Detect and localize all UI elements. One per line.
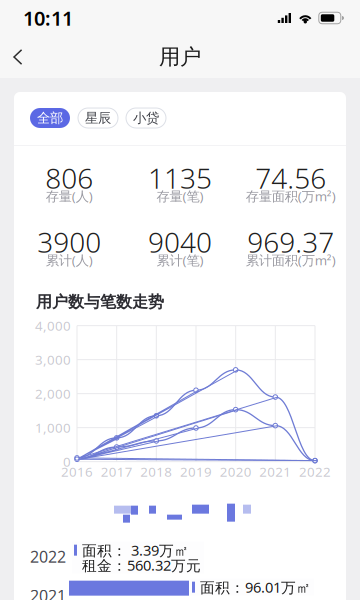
staticText: 用户 [159,44,201,70]
staticText: 1135 [148,159,212,197]
staticText: 2016 [61,463,93,480]
staticText: 2017 [101,463,133,480]
button[interactable]: 小贷 [126,108,166,128]
staticText: 2020 [220,463,252,480]
staticText: 租金：560.32万元 [82,555,201,575]
staticText: 存量(人) [46,187,93,205]
button[interactable]: 星辰 [78,108,118,128]
staticText: 2019 [180,463,212,480]
staticText: 存量面积(万m²) [246,187,336,205]
staticText: 9040 [148,223,212,261]
staticText: 10:11 [23,5,73,31]
staticText: 2021 [30,585,66,600]
staticText: 4,000 [35,317,71,334]
staticText: 969.37 [247,223,334,261]
staticText: 2022 [299,463,331,480]
staticText: 全部 [37,110,63,126]
staticText: 面积：96.01万㎡ [200,577,311,597]
button[interactable]: 全部 [30,108,70,128]
staticText: 存量(笔) [156,187,203,205]
staticText: 1,000 [35,419,71,436]
button[interactable]: 返回 [0,36,37,78]
staticText: 累计(笔) [156,251,203,269]
staticText: 面积： 3.39万㎡ [82,540,189,560]
staticText: 用户数与笔数走势 [36,292,164,312]
staticText: 小贷 [133,110,159,126]
staticText: 星辰 [85,110,111,126]
staticText: 806 [45,159,93,197]
staticText: 2021 [259,463,291,480]
staticText: 74.56 [255,159,326,197]
staticText: 累计面积(万m²) [246,251,336,269]
staticText: 3,000 [35,351,71,368]
staticText: 2,000 [35,385,71,402]
staticText: 0 [63,453,71,470]
staticText: 2018 [140,463,172,480]
staticText: 2022 [30,546,66,567]
staticText: 累计(人) [46,251,93,269]
staticText: 3900 [37,223,101,261]
